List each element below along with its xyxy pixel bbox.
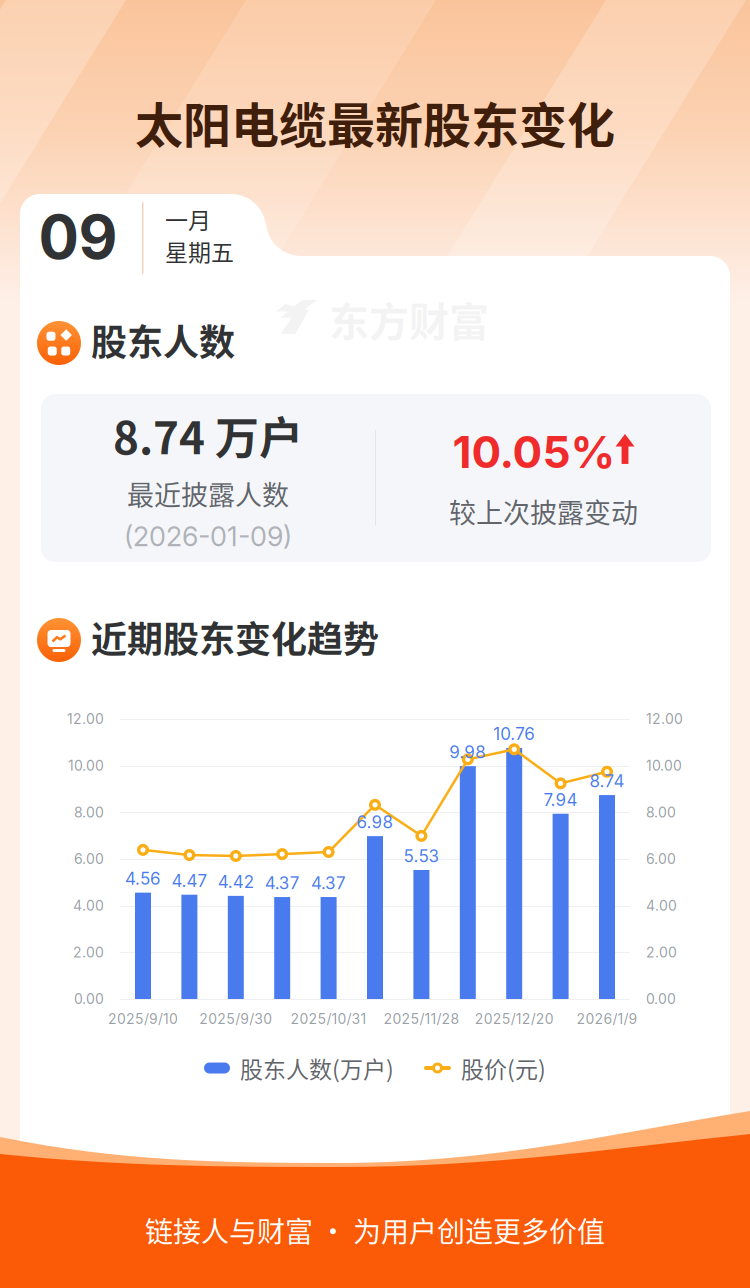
staticText: 2025/10/31 bbox=[291, 1010, 367, 1027]
staticText: 2025/9/10 bbox=[108, 1010, 178, 1027]
staticText: 8.74 万户 bbox=[113, 403, 303, 467]
staticText: 一月 bbox=[165, 202, 211, 236]
staticText: 6.00 bbox=[74, 850, 104, 867]
staticText: 2.00 bbox=[646, 944, 677, 961]
staticText: 6.00 bbox=[646, 850, 676, 867]
staticText: 股东人数(万户) bbox=[240, 1051, 394, 1085]
staticText: 10.00 bbox=[68, 757, 104, 774]
staticText: 10.00 bbox=[646, 757, 682, 774]
staticText: 09 bbox=[38, 201, 117, 273]
staticText: 12.00 bbox=[67, 710, 104, 727]
staticText: 股价(元) bbox=[461, 1051, 546, 1085]
staticText: 链接人与财富 · 为用户创造更多价值 bbox=[145, 1210, 605, 1250]
staticText: 0.00 bbox=[646, 990, 676, 1007]
staticText: 2026/1/9 bbox=[576, 1010, 637, 1027]
staticText: 较上次披露变动 bbox=[449, 492, 638, 531]
staticText: 股东人数 bbox=[91, 314, 235, 366]
staticText: 4.47 bbox=[171, 870, 207, 891]
staticText: 8.00 bbox=[646, 804, 676, 821]
staticText: 2025/11/28 bbox=[383, 1010, 459, 1027]
staticText: 10.76 bbox=[493, 724, 535, 744]
staticText: 近期股东变化趋势 bbox=[91, 611, 379, 663]
staticText: 6.98 bbox=[356, 812, 393, 832]
staticText: 东方财富 bbox=[329, 290, 489, 348]
staticText: 星期五 bbox=[165, 234, 234, 268]
staticText: (2026-01-09) bbox=[124, 520, 292, 553]
staticText: 10.05% bbox=[452, 425, 615, 478]
staticText: 最近披露人数 bbox=[127, 474, 289, 513]
staticText: 5.53 bbox=[403, 846, 439, 866]
staticText: 2025/12/20 bbox=[475, 1010, 554, 1027]
staticText: 0.00 bbox=[74, 990, 104, 1007]
staticText: 2025/9/30 bbox=[199, 1010, 272, 1027]
staticText: 7.94 bbox=[544, 789, 578, 810]
staticText: 9.98 bbox=[449, 742, 486, 762]
staticText: 4.56 bbox=[125, 868, 161, 889]
staticText: 4.00 bbox=[646, 897, 677, 914]
staticText: 4.37 bbox=[311, 873, 346, 893]
staticText: 12.00 bbox=[646, 710, 683, 727]
staticText: 太阳电缆最新股东变化 bbox=[135, 87, 615, 157]
staticText: 8.00 bbox=[74, 804, 104, 821]
staticText: 4.42 bbox=[218, 872, 254, 892]
staticText: 4.37 bbox=[265, 873, 300, 893]
staticText: 8.74 bbox=[589, 771, 624, 791]
staticText: 2.00 bbox=[73, 944, 104, 961]
staticText: 4.00 bbox=[73, 897, 104, 914]
